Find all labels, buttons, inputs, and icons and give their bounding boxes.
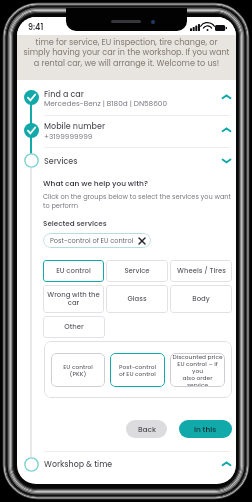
staticText: Mercedes-Benz | B180d | DN58600 [44,98,167,108]
button[interactable] [17,116,236,147]
button[interactable] [17,84,236,115]
button[interactable]: EU control (PKK) [51,353,105,387]
staticText: EU control [56,266,91,276]
button[interactable]: Glass [106,285,168,313]
staticText: Body [192,294,210,304]
staticText: Mobile number [44,121,105,132]
staticText: Workshop & time [44,459,113,470]
staticText: What can we help you with? [43,178,148,188]
button[interactable]: Post-control of EU control [110,353,165,387]
staticText: Find a car [44,89,84,100]
button[interactable]: Back [126,420,167,438]
staticText: +3199999999 [44,131,93,141]
button[interactable]: Body [170,285,232,313]
staticText: Wrong with the car [47,290,100,308]
staticText: Wheels / Tires [177,266,226,276]
staticText: In this [194,424,217,434]
staticText: EU control (PKK) [63,363,93,378]
button[interactable]: Service [106,260,168,282]
button[interactable]: Wrong with the car [43,285,104,313]
staticText: Other [64,322,84,332]
staticText: Discounted price EU control – if you als… [172,353,223,387]
staticText: 9:41 [28,22,44,33]
button[interactable]: Discounted price EU control – if you als… [170,353,225,387]
staticText: Click on the groups below to select the … [43,192,231,210]
staticText: Services [44,156,78,167]
button[interactable]: Post-control of EU control [43,233,151,248]
staticText: Post-control of EU control [119,363,156,378]
button[interactable]: EU control [43,260,104,282]
staticText: Post-control of EU control [50,236,134,245]
button[interactable] [17,452,236,476]
button[interactable]: In this [179,420,232,438]
staticText: time for service, EU inspection, tire ch… [17,36,236,69]
button[interactable] [17,148,236,172]
staticText: Back [138,424,156,434]
other: Remove service [139,238,145,244]
staticText: Glass [127,294,147,304]
button[interactable]: Other [43,316,105,338]
staticText: Service [124,266,150,276]
button[interactable]: Wheels / Tires [170,260,232,282]
staticText: Selected services [43,218,107,228]
